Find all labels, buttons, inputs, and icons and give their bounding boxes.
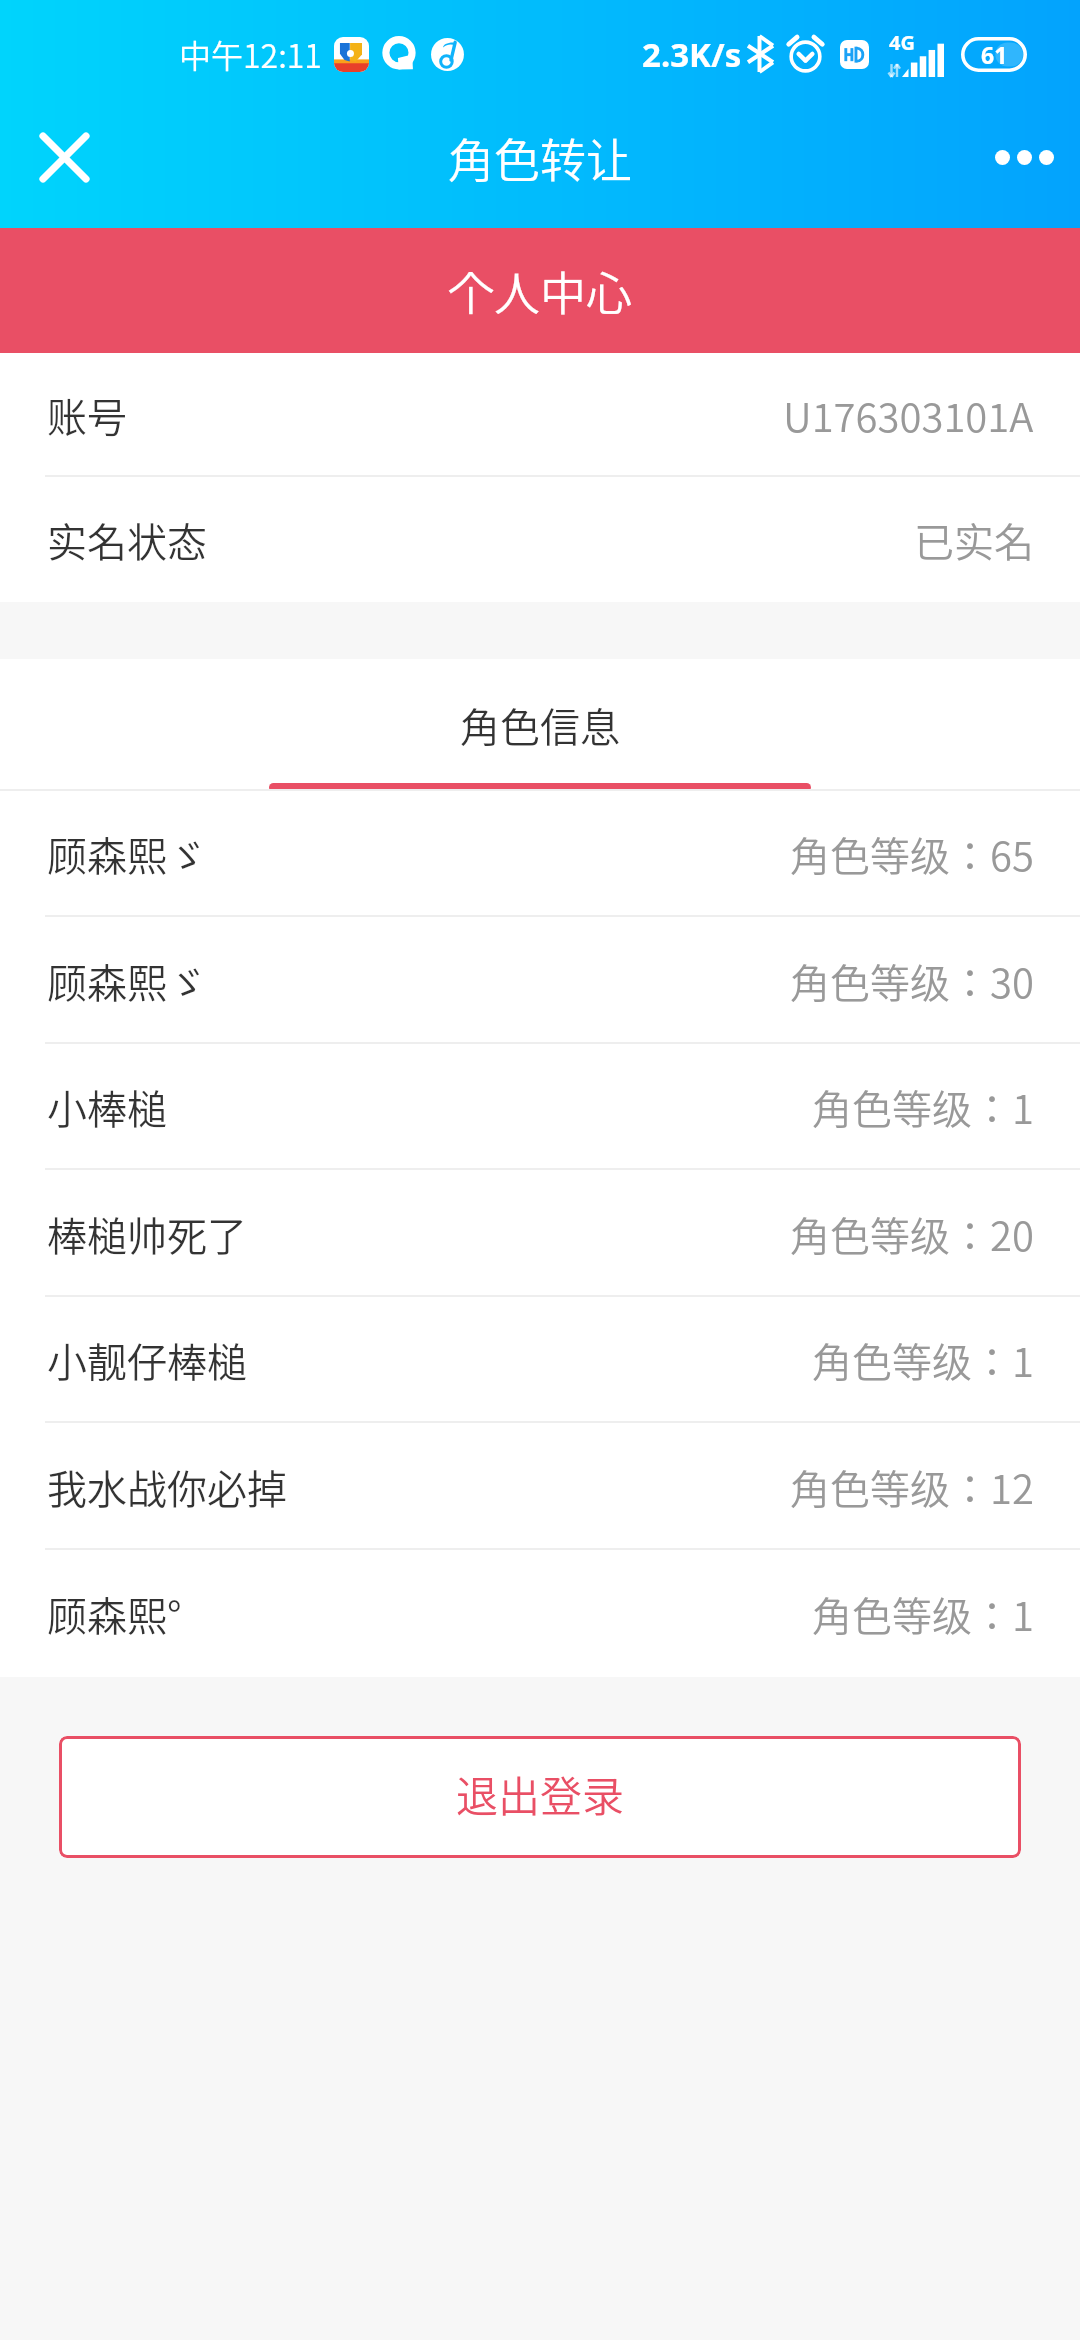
button[interactable]: 账号 <box>0 353 1080 477</box>
staticText: 小棒槌 <box>47 1078 167 1136</box>
staticText: 角色转让 <box>448 124 632 191</box>
button[interactable]: 棒槌帅死了 <box>0 1170 1080 1297</box>
button[interactable]: 小棒槌 <box>0 1044 1080 1170</box>
button[interactable]: 角色信息 <box>268 659 812 791</box>
button[interactable]: 小靓仔棒槌 <box>0 1297 1080 1423</box>
staticText: 角色等级：30 <box>790 952 1034 1010</box>
button[interactable]: More options <box>982 115 1066 199</box>
staticText: 角色等级：1 <box>812 1585 1034 1643</box>
staticText: 顾森熙° <box>47 1585 182 1643</box>
staticText: 实名状态 <box>47 511 207 569</box>
staticText: 顾森熙ゞ <box>47 825 207 883</box>
staticText: 小靓仔棒槌 <box>47 1331 247 1389</box>
staticText: 角色等级：1 <box>812 1078 1034 1136</box>
button[interactable]: 顾森熙ゞ <box>0 917 1080 1044</box>
staticText: 中午12:11 <box>179 31 322 77</box>
staticText: 棒槌帅死了 <box>47 1205 247 1263</box>
staticText: 4G <box>889 29 915 56</box>
staticText: 我水战你必掉 <box>47 1458 287 1516</box>
staticText: 61 <box>981 39 1008 70</box>
button[interactable]: Close <box>22 115 106 199</box>
button[interactable]: 实名状态 <box>0 477 1080 602</box>
staticText: 顾森熙ゞ <box>47 952 207 1010</box>
button[interactable]: 顾森熙ゞ <box>0 791 1080 917</box>
staticText: 角色等级：20 <box>790 1205 1034 1263</box>
staticText: 角色等级：1 <box>812 1331 1034 1389</box>
button[interactable]: 我水战你必掉 <box>0 1423 1080 1550</box>
staticText: 2.3K/s <box>642 32 742 77</box>
staticText: 角色等级：65 <box>790 825 1034 883</box>
staticText: U176303101A <box>783 386 1034 444</box>
staticText: 角色等级：12 <box>790 1458 1034 1516</box>
staticText: 账号 <box>47 386 127 444</box>
staticText: 个人中心 <box>448 257 632 324</box>
button[interactable]: 顾森熙° <box>0 1550 1080 1677</box>
staticText: 角色信息 <box>460 696 620 754</box>
staticText: 退出登录 <box>456 1763 625 1824</box>
staticText: 已实名 <box>914 511 1034 569</box>
button[interactable]: 退出登录 <box>59 1736 1021 1858</box>
